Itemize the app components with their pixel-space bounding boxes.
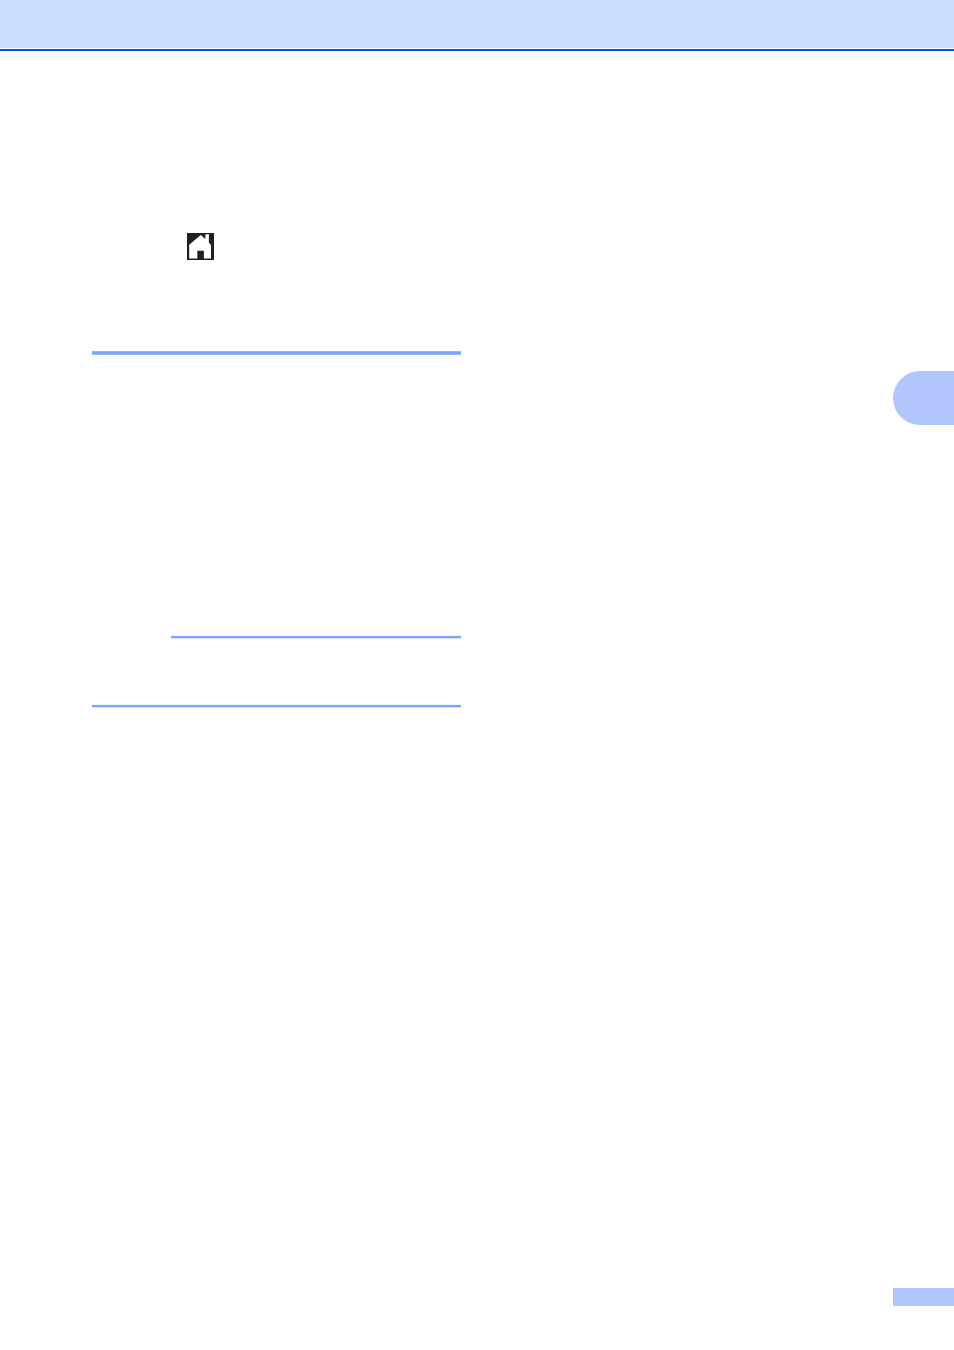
button[interactable]: Home [187, 233, 214, 260]
button[interactable]: Chapter tab [893, 371, 954, 425]
